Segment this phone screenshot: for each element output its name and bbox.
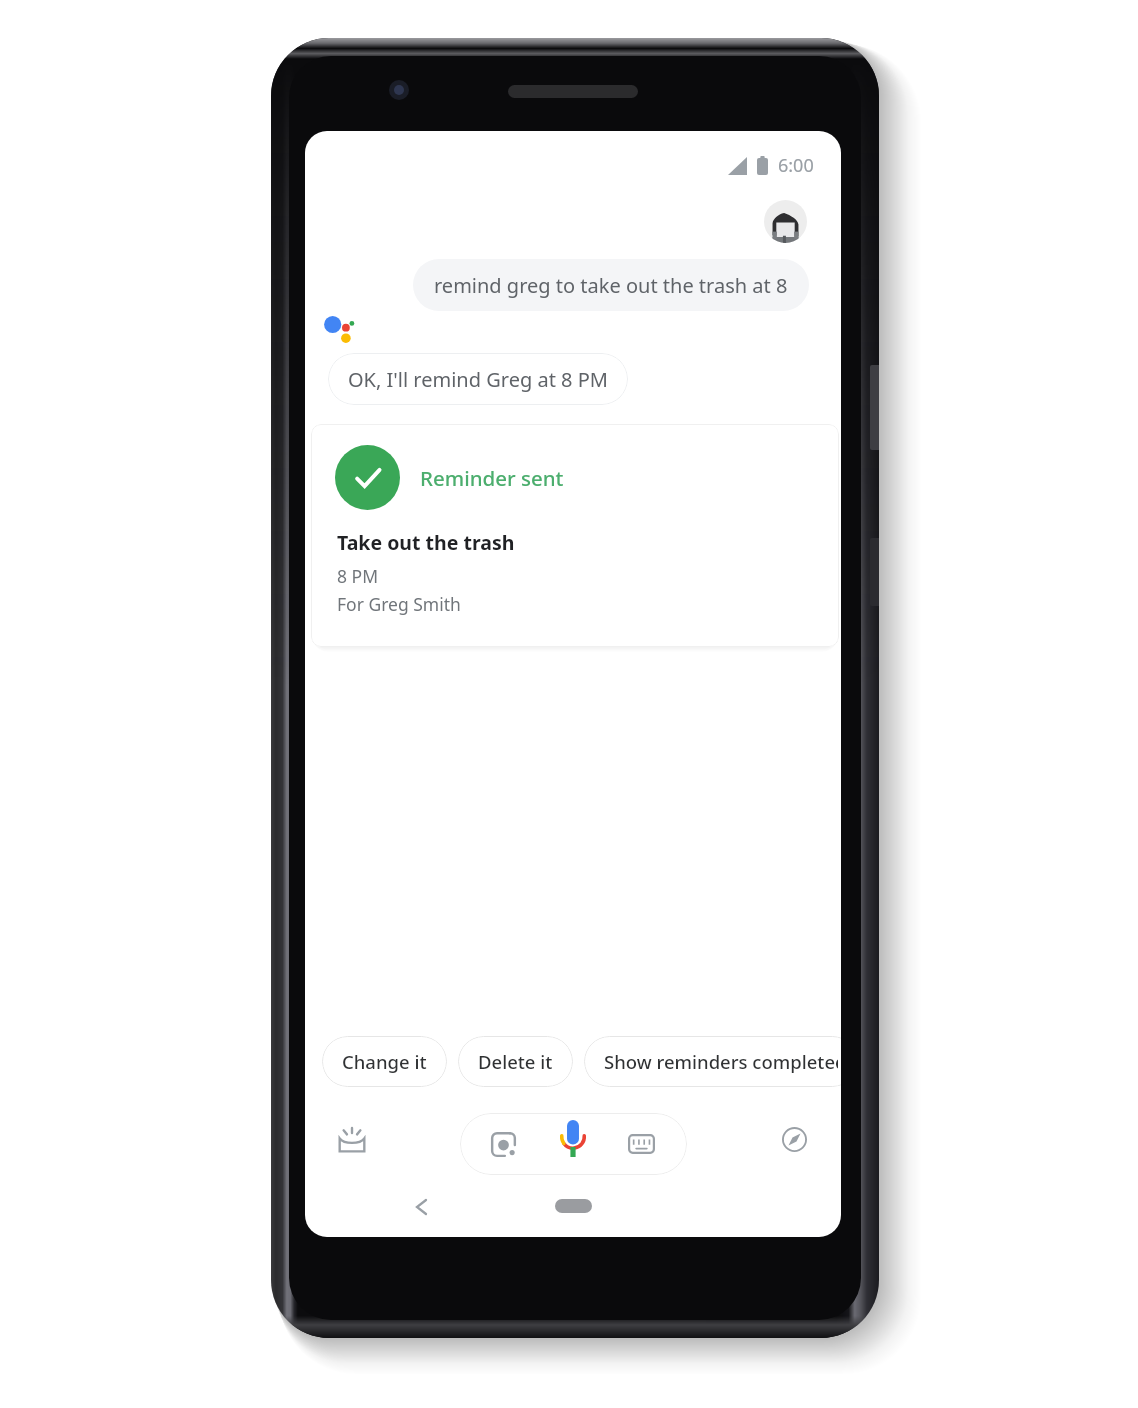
button[interactable]: Show reminders completed by Greg bbox=[584, 1036, 841, 1087]
button[interactable]: Delete it bbox=[458, 1036, 573, 1087]
staticText: For Greg Smith bbox=[337, 592, 461, 616]
staticText: Delete it bbox=[478, 1049, 553, 1074]
button[interactable]: Keyboard bbox=[626, 1132, 656, 1156]
button[interactable]: Home bbox=[555, 1199, 592, 1213]
button[interactable]: Account bbox=[764, 200, 807, 243]
staticText: Change it bbox=[342, 1049, 427, 1074]
staticText: Reminder sent bbox=[420, 464, 564, 492]
button[interactable]: Voice search bbox=[556, 1119, 590, 1157]
button[interactable]: Google Lens bbox=[489, 1130, 517, 1158]
staticText: remind greg to take out the trash at 8 bbox=[434, 272, 788, 299]
staticText: 6:00 bbox=[778, 153, 814, 178]
staticText: OK, I'll remind Greg at 8 PM bbox=[348, 366, 608, 393]
staticText: 8 PM bbox=[337, 564, 379, 588]
staticText: Take out the trash bbox=[337, 529, 515, 556]
staticText: Show reminders completed by Greg bbox=[604, 1049, 838, 1074]
button[interactable]: Explore bbox=[768, 1113, 820, 1165]
button[interactable]: Snapshot bbox=[326, 1113, 378, 1165]
button[interactable]: Reminder sent bbox=[311, 424, 839, 647]
button[interactable]: Change it bbox=[322, 1036, 447, 1087]
button[interactable]: Back bbox=[405, 1191, 437, 1223]
